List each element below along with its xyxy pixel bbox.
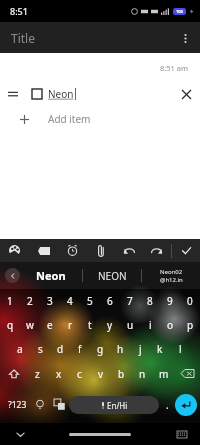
button[interactable]: Neon02 xyxy=(142,262,200,289)
button[interactable]: x xyxy=(48,361,69,386)
staticText: ?123 xyxy=(8,399,27,411)
button[interactable]: Done xyxy=(172,239,200,262)
staticText: En/Hi xyxy=(107,400,128,411)
staticText: 8:51 xyxy=(10,5,28,17)
staticText: q xyxy=(7,318,14,332)
button[interactable]: 9 xyxy=(160,289,180,313)
button[interactable]: p xyxy=(180,313,200,337)
staticText: 9 xyxy=(167,294,173,308)
staticText: 6 xyxy=(107,294,113,308)
button[interactable]: Redo xyxy=(143,239,171,262)
button[interactable]: Switch keyboard xyxy=(174,426,190,442)
button[interactable]: 6 xyxy=(100,289,120,313)
button[interactable]: More options xyxy=(170,23,200,53)
button[interactable]: a xyxy=(10,337,30,361)
button[interactable]: r xyxy=(60,313,80,337)
staticText: w xyxy=(26,318,34,332)
button[interactable]: s xyxy=(30,337,50,361)
button[interactable]: f xyxy=(70,337,90,361)
button[interactable]: 5 xyxy=(80,289,100,313)
button[interactable]: v xyxy=(90,361,111,386)
staticText: v xyxy=(98,367,104,381)
button[interactable]: 1 xyxy=(0,289,20,313)
button[interactable]: 2 xyxy=(20,289,40,313)
button[interactable]: j xyxy=(130,337,150,361)
staticText: 7 xyxy=(127,294,133,308)
staticText: s xyxy=(38,342,43,356)
button[interactable]: z xyxy=(27,361,48,386)
button[interactable]: Reorder xyxy=(0,81,26,107)
staticText: n xyxy=(139,367,146,381)
staticText: k xyxy=(157,342,163,356)
button[interactable]: Enter xyxy=(175,394,197,416)
button[interactable]: 0 xyxy=(180,289,200,313)
staticText: j xyxy=(139,342,142,356)
button[interactable]: Neon xyxy=(20,262,82,289)
button[interactable]: n xyxy=(132,361,153,386)
button[interactable]: e xyxy=(40,313,60,337)
button[interactable]: 4 xyxy=(60,289,80,313)
button[interactable]: k xyxy=(150,337,170,361)
button[interactable]: 8 xyxy=(140,289,160,313)
button[interactable]: Add item xyxy=(0,107,200,131)
staticText: b xyxy=(118,367,125,381)
button[interactable]: c xyxy=(69,361,90,386)
staticText: Neon xyxy=(36,268,66,283)
staticText: f xyxy=(78,342,82,356)
button[interactable]: Reorder xyxy=(0,81,200,107)
button[interactable]: Attach xyxy=(87,239,115,262)
staticText: i xyxy=(149,318,152,332)
button[interactable]: d xyxy=(50,337,70,361)
staticText: Title xyxy=(11,30,35,46)
button[interactable]: Check item xyxy=(26,81,48,107)
button[interactable]: m xyxy=(153,361,174,386)
button[interactable]: l xyxy=(170,337,190,361)
staticText: t xyxy=(88,318,92,332)
button[interactable]: w xyxy=(20,313,40,337)
staticText: a xyxy=(17,342,23,356)
button[interactable]: o xyxy=(160,313,180,337)
button[interactable]: b xyxy=(111,361,132,386)
button[interactable]: i xyxy=(140,313,160,337)
button[interactable]: Translate xyxy=(49,388,69,421)
staticText: 8:51 am xyxy=(160,63,189,73)
button[interactable]: ?123 xyxy=(3,388,31,421)
button[interactable]: Emoji xyxy=(31,388,49,421)
button[interactable]: NEON xyxy=(83,262,141,289)
staticText: c xyxy=(77,367,82,381)
staticText: 5 xyxy=(87,294,93,308)
button[interactable]: . xyxy=(159,388,175,421)
staticText: y xyxy=(107,318,113,332)
button[interactable]: Change colour xyxy=(0,239,29,262)
button[interactable]: Shift xyxy=(0,361,27,386)
staticText: e xyxy=(47,318,53,332)
button[interactable]: Delete item xyxy=(172,81,200,107)
button[interactable]: Back xyxy=(5,268,20,283)
button[interactable]: Hide keyboard xyxy=(12,426,28,442)
button[interactable]: h xyxy=(110,337,130,361)
button[interactable]: y xyxy=(100,313,120,337)
staticText: l xyxy=(179,342,182,356)
staticText: g xyxy=(97,342,104,356)
staticText: p xyxy=(187,318,194,332)
button[interactable]: Reminder xyxy=(58,239,87,262)
button[interactable]: 3 xyxy=(40,289,60,313)
button[interactable]: 7 xyxy=(120,289,140,313)
button[interactable]: q xyxy=(0,313,20,337)
button[interactable]: Undo xyxy=(115,239,143,262)
staticText: 1 xyxy=(7,294,13,308)
button[interactable]: Add label xyxy=(29,239,58,262)
button[interactable]: t xyxy=(80,313,100,337)
button[interactable]: Backspace xyxy=(174,361,200,386)
staticText: NEON xyxy=(98,269,127,283)
staticText: . xyxy=(166,398,169,412)
button[interactable]: En/Hi xyxy=(69,396,159,414)
staticText: @h12.in xyxy=(160,276,183,284)
staticText: 0 xyxy=(187,294,193,308)
staticText: 2 xyxy=(27,294,33,308)
button[interactable]: g xyxy=(90,337,110,361)
staticText: Add item xyxy=(48,112,91,126)
button[interactable]: u xyxy=(120,313,140,337)
staticText: 3 xyxy=(47,294,53,308)
staticText: Neon xyxy=(48,87,74,101)
